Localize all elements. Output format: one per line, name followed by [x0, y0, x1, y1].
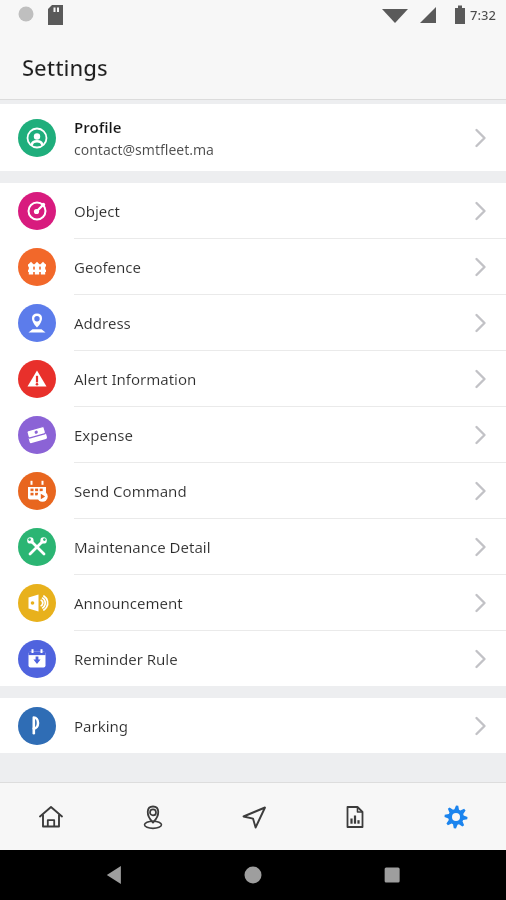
- button[interactable]: Places: [102, 783, 203, 850]
- button[interactable]: Object: [0, 183, 506, 238]
- staticText: Alert Information: [74, 369, 470, 389]
- button[interactable]: Expense: [0, 407, 506, 462]
- staticText: Maintenance Detail: [74, 537, 470, 557]
- button[interactable]: Reminder Rule: [0, 631, 506, 686]
- staticText: 7:32: [470, 6, 496, 24]
- button[interactable]: Track: [203, 783, 304, 850]
- button[interactable]: Profile: [0, 104, 506, 171]
- button[interactable]: Settings: [405, 783, 506, 850]
- staticText: Send Command: [74, 481, 470, 501]
- button[interactable]: Geofence: [0, 239, 506, 294]
- button[interactable]: Parking: [0, 698, 506, 753]
- staticText: Parking: [74, 716, 470, 736]
- staticText: Settings: [22, 52, 108, 82]
- button[interactable]: Home: [0, 783, 102, 850]
- staticText: Profile: [74, 117, 122, 137]
- staticText: Reminder Rule: [74, 649, 470, 669]
- staticText: contact@smtfleet.ma: [74, 140, 214, 159]
- staticText: Object: [74, 201, 470, 221]
- staticText: Address: [74, 313, 470, 333]
- staticText: Geofence: [74, 257, 470, 277]
- button[interactable]: Reports: [304, 783, 405, 850]
- staticText: Announcement: [74, 593, 470, 613]
- button[interactable]: Announcement: [0, 575, 506, 630]
- button[interactable]: Maintenance Detail: [0, 519, 506, 574]
- button[interactable]: Alert Information: [0, 351, 506, 406]
- staticText: Expense: [74, 425, 470, 445]
- button[interactable]: Send Command: [0, 463, 506, 518]
- button[interactable]: Address: [0, 295, 506, 350]
